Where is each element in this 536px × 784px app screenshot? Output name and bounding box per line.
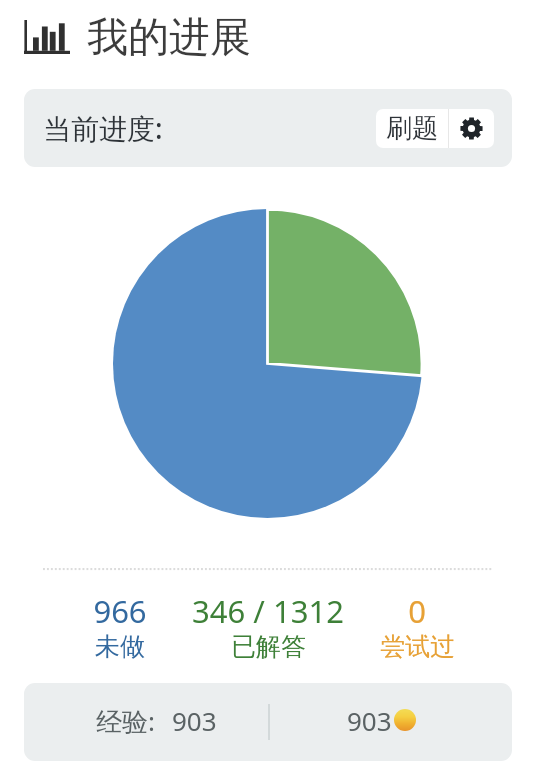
staticText: 903 [347,703,392,738]
staticText: 刷题 [386,112,438,145]
button[interactable]: 刷题 [376,109,448,148]
staticText: 346 / 1312 [192,590,344,632]
button[interactable]: 966 [25,590,215,664]
button[interactable]: 0 [322,590,512,664]
staticText: 当前进度: [43,109,163,147]
staticText: 我的进展 [87,12,251,64]
button[interactable]: Progress pie chart [113,209,422,518]
button[interactable]: Settings [449,109,494,148]
button[interactable]: 903 [270,683,512,761]
button[interactable]: 346 / 1312 [173,590,363,664]
staticText: 尝试过 [380,631,455,662]
staticText: 经验: [96,703,155,739]
button[interactable]: 经验: [24,683,268,761]
staticText: 966 [93,590,147,632]
staticText: 已解答 [231,631,306,662]
other: Statistics [24,20,70,54]
staticText: 903 [172,703,217,738]
staticText: 未做 [95,631,145,662]
staticText: 0 [408,590,426,632]
